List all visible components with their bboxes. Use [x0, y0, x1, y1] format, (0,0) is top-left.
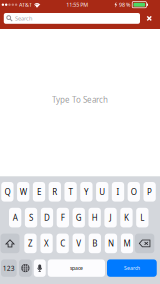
- staticText: L: [140, 212, 144, 223]
- staticText: E: [37, 186, 41, 197]
- staticText: O: [131, 186, 137, 197]
- staticText: J: [110, 212, 112, 223]
- staticText: N: [108, 238, 114, 249]
- staticText: H: [92, 212, 98, 223]
- button[interactable]: W: [17, 182, 29, 202]
- button[interactable]: M: [121, 234, 133, 253]
- button[interactable]: Dictation: [34, 259, 46, 277]
- staticText: 11:55 PM: [66, 1, 88, 8]
- staticText: P: [147, 186, 152, 197]
- button[interactable]: Next keyboard: [19, 259, 32, 277]
- staticText: space: [70, 265, 83, 271]
- staticText: S: [29, 212, 33, 223]
- button[interactable]: A: [9, 208, 21, 227]
- button[interactable]: T: [64, 182, 77, 202]
- staticText: Type To Search: [52, 94, 108, 105]
- button[interactable]: V: [73, 234, 85, 253]
- staticText: W: [20, 186, 27, 197]
- staticText: U: [99, 186, 105, 197]
- staticText: G: [76, 212, 82, 223]
- button[interactable]: X: [40, 234, 53, 253]
- staticText: 123: [3, 264, 15, 273]
- staticText: T: [69, 186, 73, 197]
- button[interactable]: Close search: [140, 13, 158, 24]
- button[interactable]: O: [128, 182, 140, 202]
- button[interactable]: P: [143, 182, 156, 202]
- button[interactable]: Y: [80, 182, 92, 202]
- button[interactable]: F: [57, 208, 69, 227]
- staticText: V: [76, 238, 81, 249]
- staticText: Search: [124, 265, 140, 271]
- button[interactable]: E: [33, 182, 45, 202]
- staticText: A: [13, 212, 18, 223]
- button[interactable]: K: [120, 208, 133, 227]
- button[interactable]: H: [88, 208, 101, 227]
- button[interactable]: R: [49, 182, 61, 202]
- button[interactable]: Numbers: [1, 259, 17, 277]
- button[interactable]: N: [105, 234, 117, 253]
- staticText: R: [52, 186, 57, 197]
- button[interactable]: Q: [1, 182, 13, 202]
- button[interactable]: D: [41, 208, 53, 227]
- button[interactable]: Z: [24, 234, 37, 253]
- button[interactable]: U: [96, 182, 108, 202]
- button[interactable]: L: [136, 208, 148, 227]
- button[interactable]: Delete: [135, 234, 154, 253]
- staticText: Z: [28, 238, 33, 249]
- button[interactable]: G: [73, 208, 85, 227]
- staticText: C: [60, 238, 65, 249]
- staticText: D: [44, 212, 50, 223]
- staticText: X: [44, 238, 49, 249]
- staticText: 98 %: [119, 1, 130, 8]
- button[interactable]: Search: [107, 259, 157, 277]
- staticText: M: [123, 238, 130, 249]
- staticText: AT&T: [19, 1, 32, 8]
- button[interactable]: I: [112, 182, 124, 202]
- staticText: F: [61, 212, 65, 223]
- staticText: Q: [4, 186, 10, 197]
- staticText: Y: [84, 186, 89, 197]
- button[interactable]: B: [89, 234, 101, 253]
- staticText: B: [92, 238, 97, 249]
- staticText: I: [116, 186, 119, 197]
- staticText: K: [124, 212, 129, 223]
- button[interactable]: Shift: [0, 234, 19, 253]
- staticText: Search: [15, 15, 32, 22]
- button[interactable]: space: [48, 259, 105, 277]
- button[interactable]: S: [25, 208, 37, 227]
- button[interactable]: J: [104, 208, 117, 227]
- button[interactable]: C: [56, 234, 69, 253]
